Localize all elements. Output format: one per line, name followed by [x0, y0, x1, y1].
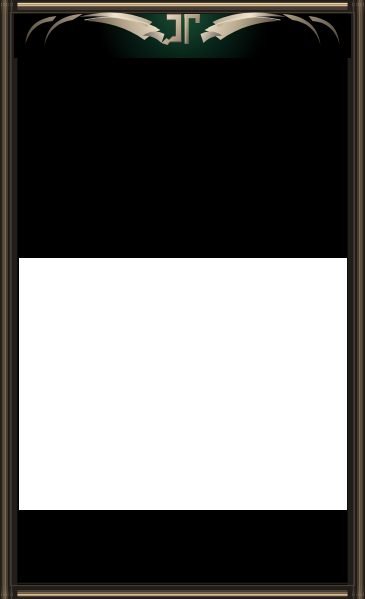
button[interactable]: Ornate framed content screen — [0, 0, 365, 599]
